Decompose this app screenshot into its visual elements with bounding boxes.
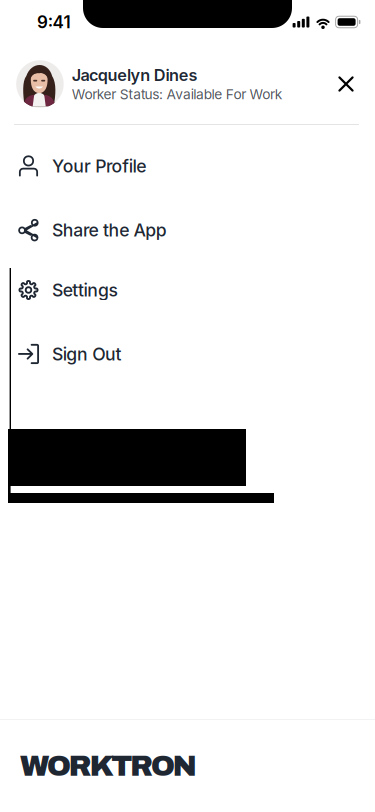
button[interactable]: Sign Out [0, 326, 375, 382]
button[interactable]: Settings [0, 262, 375, 318]
staticText: WORKTRON [20, 750, 197, 782]
staticText: Jacquelyn Dines [72, 65, 197, 85]
button[interactable]: Close [324, 62, 368, 106]
staticText: Worker Status: Available For Work [72, 86, 283, 103]
staticText: Settings [52, 279, 118, 301]
staticText: Sign Out [52, 343, 122, 365]
button[interactable]: Share the App [0, 202, 375, 258]
staticText: Your Profile [52, 155, 146, 177]
button[interactable]: Your Profile [0, 138, 375, 194]
staticText: 9:41 [37, 12, 70, 32]
staticText: Share the App [52, 219, 167, 241]
